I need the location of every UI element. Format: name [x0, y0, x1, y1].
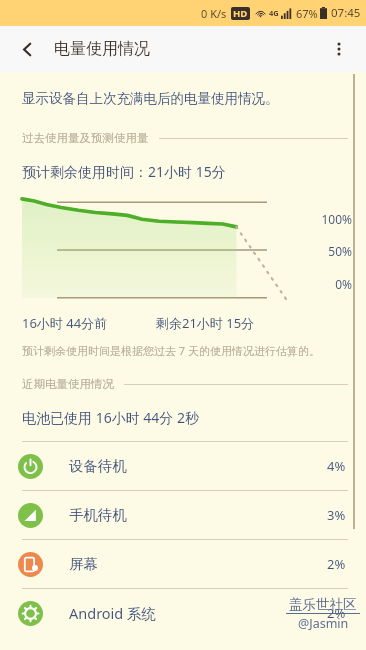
staticText: 过去使用量及预测使用量	[22, 131, 149, 145]
staticText: 3%	[327, 506, 346, 524]
staticText: 显示设备自上次充满电后的电量使用情况。	[22, 90, 279, 107]
button[interactable]: 屏幕	[0, 539, 366, 588]
staticText: 盖乐世社区	[289, 596, 357, 613]
staticText: HD	[233, 7, 248, 20]
staticText: 预计剩余使用时间：21小时 15分	[22, 162, 226, 181]
staticText: 近期电量使用情况	[22, 377, 114, 391]
staticText: Android 系统	[69, 603, 327, 623]
staticText: 手机待机	[69, 506, 327, 524]
staticText: 2%	[327, 604, 346, 622]
staticText: @Jasmin	[298, 615, 349, 632]
button[interactable]: Back	[8, 30, 46, 68]
staticText: 50%	[308, 243, 352, 259]
staticText: 4G	[269, 8, 279, 18]
staticText: 4%	[327, 457, 346, 475]
staticText: 100%	[308, 211, 352, 227]
staticText: 0 K/s	[201, 6, 227, 21]
staticText: 2%	[327, 555, 346, 573]
staticText: 预计剩余使用时间是根据您过去 7 天的使用情况进行估算的。	[22, 343, 321, 358]
button[interactable]: Android 系统	[0, 588, 366, 637]
staticText: 电池已使用 16小时 44分 2秒	[22, 408, 199, 427]
button[interactable]: 设备待机	[0, 441, 366, 490]
staticText: 67%	[296, 6, 318, 21]
staticText: 16小时 44分前	[22, 314, 108, 332]
button[interactable]: 手机待机	[0, 490, 366, 539]
staticText: 07:45	[331, 5, 361, 21]
staticText: 0%	[308, 276, 352, 292]
button[interactable]: More options	[320, 30, 358, 68]
staticText: 屏幕	[69, 555, 327, 573]
staticText: 电量使用情况	[54, 39, 150, 59]
staticText: 剩余21小时 15分	[156, 314, 255, 332]
staticText: 设备待机	[69, 457, 327, 475]
